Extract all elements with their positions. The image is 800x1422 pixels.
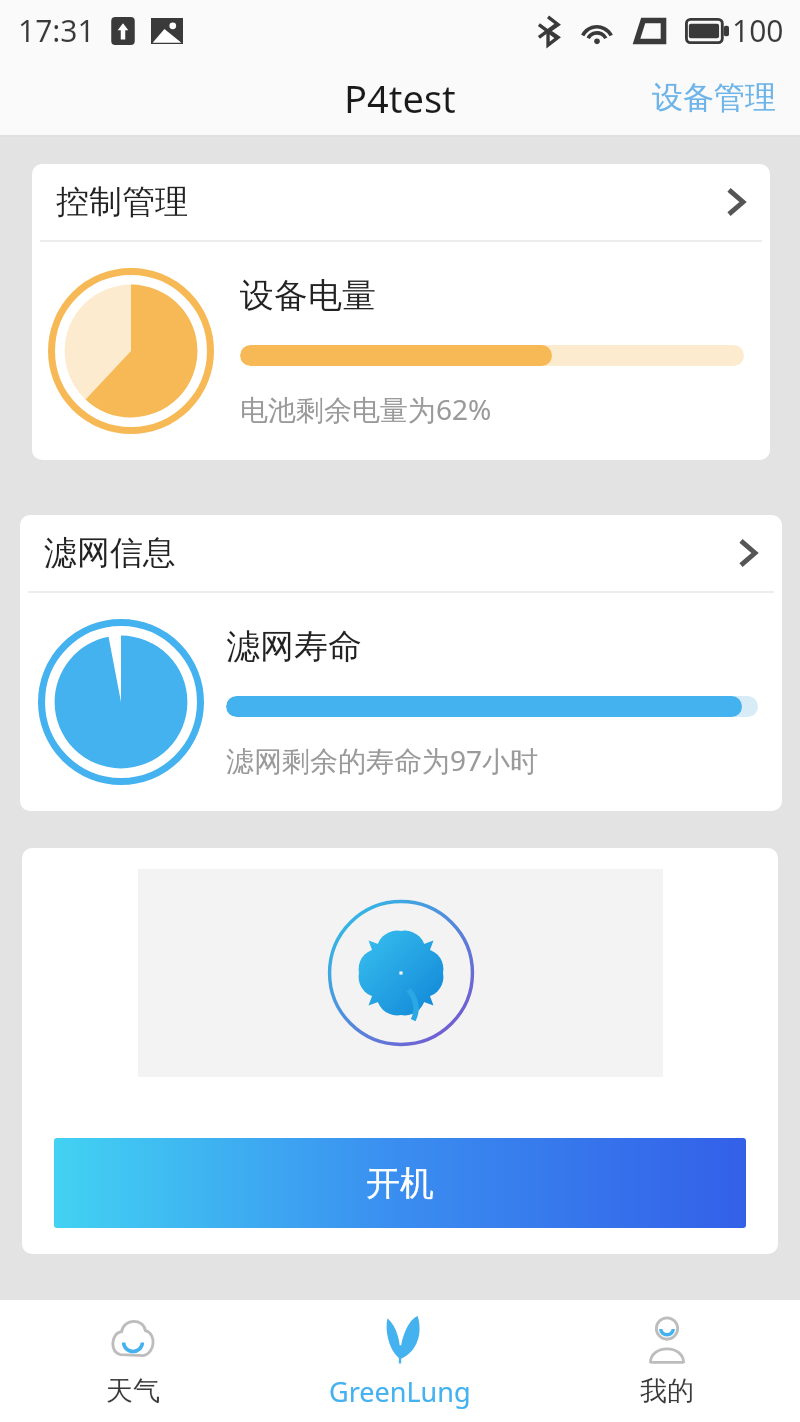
staticText: 滤网寿命	[226, 625, 362, 668]
staticText: 100	[732, 10, 784, 51]
button[interactable]: 开机	[54, 1138, 746, 1228]
staticText: 滤网剩余的寿命为97小时	[226, 741, 539, 779]
button[interactable]: 我的	[533, 1300, 800, 1422]
button[interactable]: 设备管理	[628, 66, 800, 129]
staticText: 控制管理	[56, 181, 188, 223]
staticText: 我的	[640, 1374, 694, 1408]
staticText: GreenLung	[329, 1373, 471, 1410]
button[interactable]: 天气	[0, 1300, 266, 1422]
staticText: 17:31	[18, 10, 95, 51]
other: More	[738, 537, 758, 569]
staticText: 天气	[106, 1374, 160, 1408]
other: More	[726, 186, 746, 218]
staticText: 开机	[366, 1162, 434, 1205]
staticText: P4test	[344, 72, 456, 124]
staticText: 滤网信息	[44, 532, 176, 574]
button[interactable]: 滤网信息	[20, 515, 782, 591]
staticText: 设备电量	[240, 274, 376, 317]
button[interactable]: GreenLung	[266, 1300, 533, 1422]
staticText: 电池剩余电量为62%	[240, 390, 492, 428]
staticText: 设备管理	[652, 78, 776, 117]
button[interactable]: 控制管理	[32, 164, 770, 240]
